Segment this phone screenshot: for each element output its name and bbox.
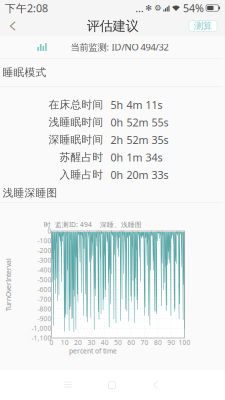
staticText: 20 bbox=[74, 338, 82, 347]
staticText: … bbox=[135, 1, 143, 15]
staticText: 0h 20m 33s bbox=[110, 168, 168, 182]
staticText: 60 bbox=[127, 338, 135, 347]
staticText: 40 bbox=[101, 338, 109, 347]
staticText: -700 bbox=[37, 295, 51, 304]
staticText: 10 bbox=[61, 338, 69, 347]
staticText: -600 bbox=[37, 285, 51, 294]
staticText: TurnOverInterval bbox=[0, 280, 35, 289]
staticText: 浅睡深睡图 bbox=[2, 186, 57, 199]
staticText: 苏醒占时 bbox=[59, 151, 103, 164]
staticText: 54% bbox=[183, 1, 204, 15]
staticText: 70 bbox=[141, 338, 149, 347]
staticText: 在床总时间 bbox=[48, 98, 103, 111]
staticText: 2h 52m 35s bbox=[110, 133, 168, 147]
staticText: 30 bbox=[87, 338, 95, 347]
staticText: -900 bbox=[37, 314, 51, 323]
staticText: 90 bbox=[167, 338, 175, 347]
staticText: 50 bbox=[114, 338, 122, 347]
staticText: ✻ bbox=[145, 3, 152, 13]
staticText: 0 bbox=[47, 227, 51, 235]
staticText: ⚙ bbox=[154, 3, 161, 13]
staticText: -500 bbox=[37, 275, 51, 284]
staticText: -1,100 bbox=[31, 334, 51, 342]
staticText: 下午2:08 bbox=[5, 1, 48, 15]
staticText: -1,000 bbox=[31, 324, 51, 333]
staticText: -100 bbox=[37, 236, 51, 245]
staticText: 时 监测ID: 494 深睡、浅睡图 bbox=[44, 220, 142, 229]
staticText: 测算 bbox=[194, 20, 212, 32]
staticText: -400 bbox=[37, 265, 51, 274]
button[interactable]: 测算 bbox=[189, 20, 217, 31]
staticText: 入睡占时 bbox=[59, 168, 103, 181]
staticText: 80 bbox=[154, 338, 162, 347]
button[interactable]: Back bbox=[0, 16, 26, 36]
staticText: 评估建议 bbox=[86, 18, 138, 34]
staticText: 浅睡眠时间 bbox=[48, 116, 103, 129]
staticText: 0h 1m 34s bbox=[110, 150, 162, 164]
staticText: percent of time bbox=[69, 347, 117, 355]
staticText: -800 bbox=[37, 304, 51, 313]
staticText: 当前监测: ID/NO 494/32 bbox=[70, 41, 168, 53]
staticText: -300 bbox=[37, 256, 51, 265]
staticText: 0h 52m 55s bbox=[110, 115, 168, 129]
staticText: 睡眠模式 bbox=[2, 66, 46, 79]
staticText: 5h 4m 11s bbox=[110, 98, 162, 112]
staticText: 100 bbox=[178, 338, 190, 347]
staticText: 深睡眠时间 bbox=[48, 133, 103, 146]
staticText: 0 bbox=[49, 338, 53, 347]
staticText: -200 bbox=[37, 246, 51, 255]
